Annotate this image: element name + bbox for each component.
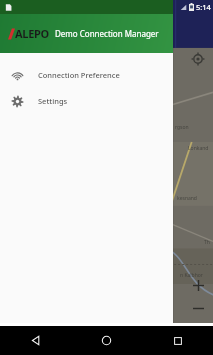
button[interactable]: Connection Preference bbox=[0, 62, 173, 88]
button[interactable]: Home bbox=[71, 326, 142, 355]
button[interactable]: Zoom in bbox=[189, 276, 207, 294]
staticText: kesnand bbox=[177, 195, 197, 202]
staticText: Settings bbox=[38, 96, 68, 106]
staticText: Th bbox=[204, 239, 210, 246]
staticText: Lonkand bbox=[188, 145, 209, 152]
staticText: n Kalbhor bbox=[180, 272, 203, 279]
button[interactable]: Back bbox=[0, 326, 71, 355]
button[interactable]: Zoom out bbox=[189, 299, 207, 317]
staticText: 5:14 bbox=[196, 2, 211, 12]
button[interactable]: Settings bbox=[0, 88, 173, 114]
staticText: rgson bbox=[175, 124, 189, 131]
staticText: ALEPO bbox=[15, 26, 49, 41]
button[interactable]: My location bbox=[191, 52, 205, 66]
button[interactable]: Recent apps bbox=[142, 326, 213, 355]
staticText: Connection Preference bbox=[38, 70, 120, 80]
staticText: Demo Connection Manager bbox=[55, 28, 159, 39]
